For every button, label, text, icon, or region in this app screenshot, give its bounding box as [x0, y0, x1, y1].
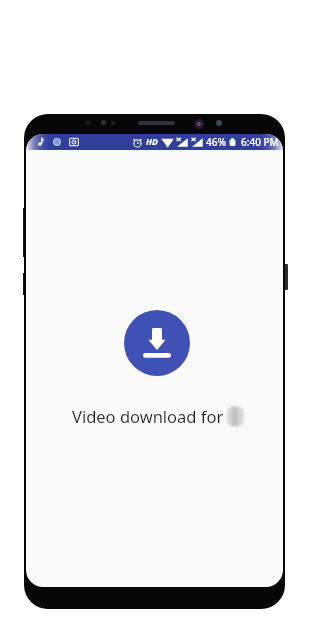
button[interactable]: Download	[124, 310, 190, 376]
staticText: Video download for	[72, 405, 224, 427]
staticText: 46%	[206, 135, 226, 149]
staticText: HD	[146, 136, 158, 148]
staticText: 6:40 PM	[241, 135, 279, 149]
